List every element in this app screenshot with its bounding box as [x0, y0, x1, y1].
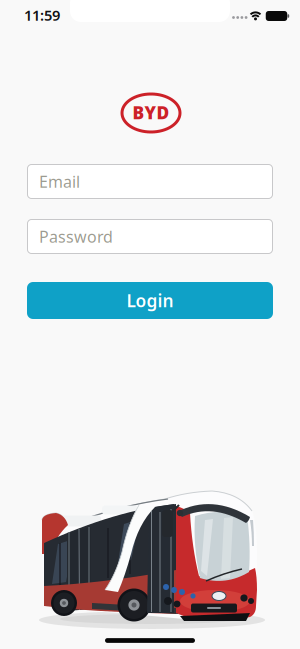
staticText: Password	[39, 226, 113, 247]
staticText: Email	[39, 171, 80, 192]
staticText: Login	[126, 289, 173, 312]
button[interactable]: Login	[27, 282, 273, 319]
secureTextField[interactable]: Password	[39, 226, 273, 247]
textField[interactable]: Email	[39, 171, 273, 192]
staticText: BYD	[132, 101, 169, 124]
staticText: 11:59	[24, 5, 60, 25]
